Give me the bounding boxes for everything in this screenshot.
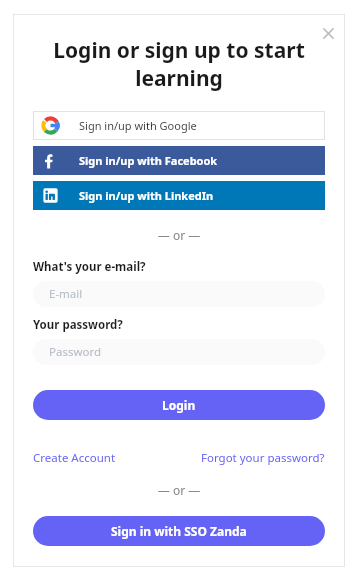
staticText: — or —	[33, 482, 325, 498]
button[interactable]: Create Account	[33, 450, 116, 466]
button[interactable]: Sign in/up with Google	[33, 111, 325, 140]
staticText: Create Account	[33, 450, 116, 466]
staticText: Login	[162, 397, 196, 413]
staticText: Sign in/up with Facebook	[79, 153, 218, 168]
button[interactable]: Close	[317, 22, 339, 44]
button[interactable]: Login	[33, 390, 325, 420]
staticText: Password	[49, 344, 102, 360]
staticText: Your password?	[33, 317, 123, 333]
button[interactable]: Sign in/up with Facebook	[33, 146, 325, 175]
staticText: Forgot your password?	[201, 450, 325, 466]
staticText: What's your e-mail?	[33, 259, 146, 275]
staticText: Login or sign up to start learning	[43, 36, 315, 92]
staticText: Sign in with SSO Zanda	[111, 523, 247, 539]
button[interactable]: Sign in/up with LinkedIn	[33, 181, 325, 210]
staticText: — or —	[33, 227, 325, 243]
button[interactable]: Password	[33, 339, 325, 365]
button[interactable]: Sign in with SSO Zanda	[33, 516, 325, 546]
staticText: Sign in/up with Google	[79, 118, 197, 133]
button[interactable]: E-mail	[33, 281, 325, 307]
staticText: Sign in/up with LinkedIn	[79, 188, 214, 203]
button[interactable]: Forgot your password?	[201, 450, 325, 466]
staticText: E-mail	[49, 286, 83, 302]
